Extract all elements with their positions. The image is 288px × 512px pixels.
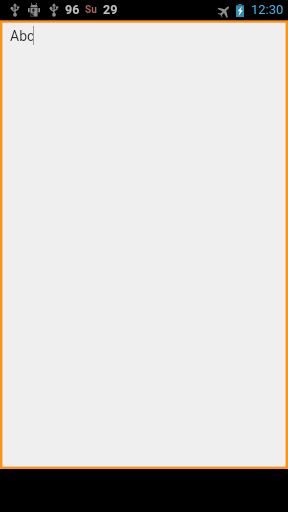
staticText: 29 [103, 2, 118, 17]
staticText: Abc [10, 28, 35, 44]
staticText: Su [85, 4, 97, 16]
button[interactable]: Abc [0, 20, 288, 469]
staticText: 12:30 [251, 2, 284, 17]
staticText: 96 [65, 2, 80, 17]
